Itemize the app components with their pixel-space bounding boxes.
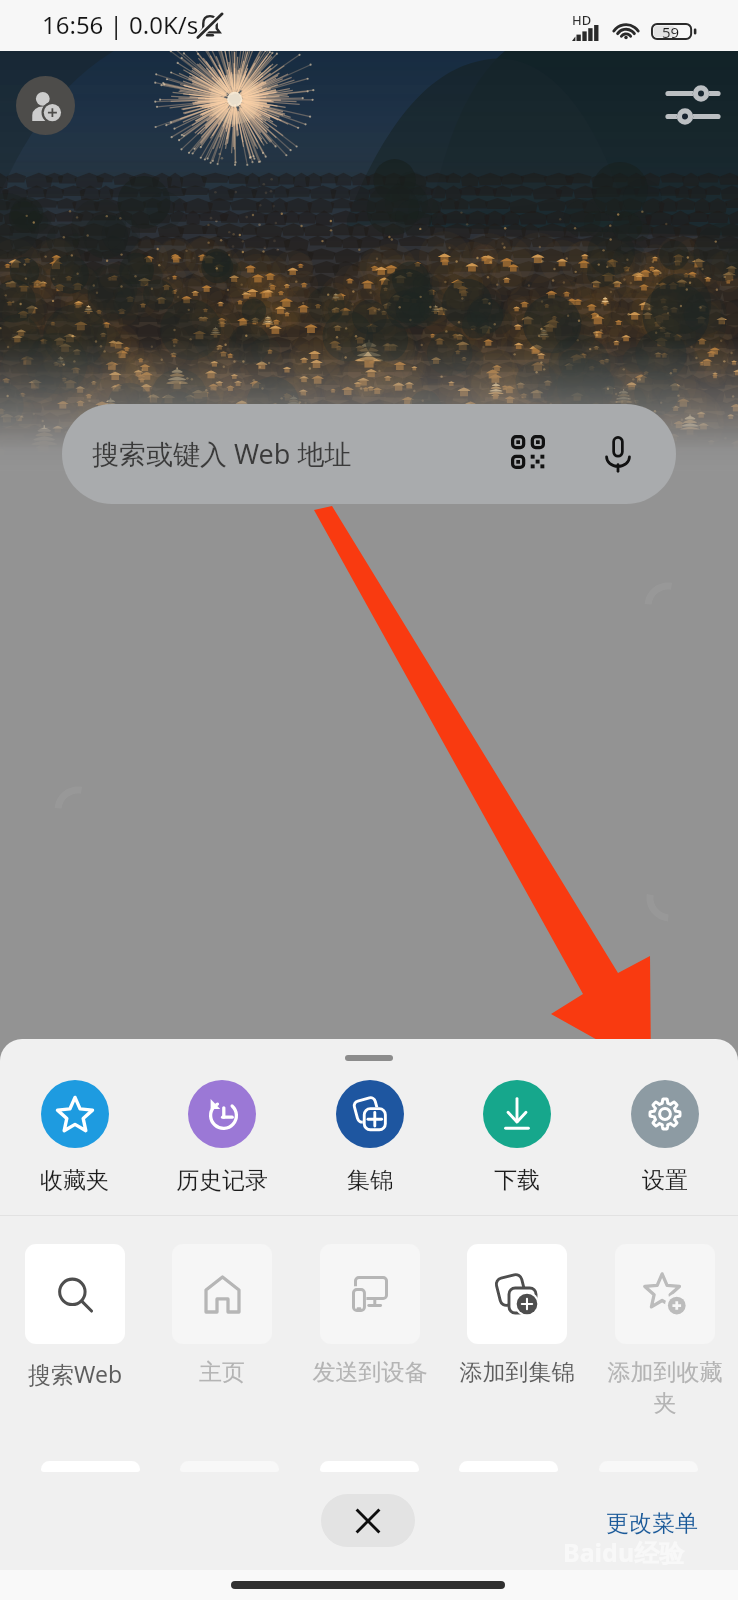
- staticText: 添加到收藏夹: [605, 1358, 725, 1418]
- button[interactable]: 收藏夹: [1, 1080, 148, 1195]
- staticText: 59: [662, 22, 680, 39]
- button[interactable]: Voice search: [589, 425, 647, 483]
- button[interactable]: 历史记录: [148, 1080, 295, 1195]
- staticText: 下载: [494, 1166, 540, 1195]
- button[interactable]: 添加到集锦: [443, 1244, 590, 1387]
- button[interactable]: 主页: [148, 1244, 295, 1387]
- button[interactable]: Add profile: [16, 76, 75, 135]
- staticText: 搜索Web: [15, 1358, 135, 1389]
- button[interactable]: 添加到收藏夹: [591, 1244, 738, 1418]
- staticText: 收藏夹: [40, 1166, 109, 1195]
- button[interactable]: 下载: [443, 1080, 590, 1195]
- staticText: 16:56 | 0.0K/s: [42, 8, 199, 41]
- button[interactable]: Close: [321, 1494, 415, 1547]
- staticText: 历史记录: [176, 1166, 268, 1195]
- button[interactable]: 更改菜单: [606, 1509, 698, 1538]
- staticText: HD: [572, 11, 592, 29]
- staticText: 设置: [642, 1166, 688, 1195]
- staticText: 集锦: [347, 1166, 393, 1195]
- staticText: Baidu经验: [563, 1535, 685, 1569]
- button[interactable]: 搜索Web: [1, 1244, 148, 1389]
- staticText: 主页: [162, 1358, 282, 1387]
- staticText: 更改菜单: [606, 1509, 698, 1538]
- staticText: 发送到设备: [310, 1358, 430, 1387]
- button[interactable]: 发送到设备: [296, 1244, 443, 1387]
- staticText: 添加到集锦: [457, 1358, 577, 1387]
- button[interactable]: 集锦: [296, 1080, 443, 1195]
- button[interactable]: Scan QR code: [499, 425, 557, 483]
- button[interactable]: 搜索或键入 Web 地址: [62, 404, 676, 504]
- button[interactable]: 设置: [591, 1080, 738, 1195]
- button[interactable]: Customize: [656, 78, 730, 132]
- staticText: 搜索或键入 Web 地址: [92, 435, 352, 472]
